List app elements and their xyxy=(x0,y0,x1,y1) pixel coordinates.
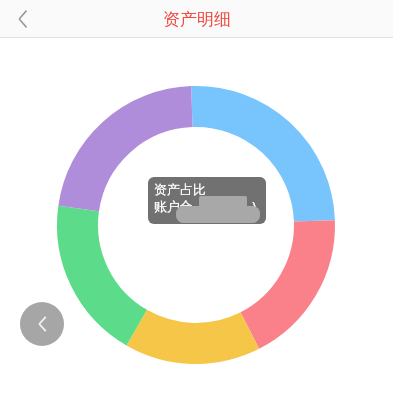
button[interactable]: Back xyxy=(0,0,46,38)
staticText: 资产明细 xyxy=(163,9,231,30)
button[interactable]: Back xyxy=(20,302,64,346)
staticText: 账户合 xyxy=(154,198,193,214)
staticText: ) xyxy=(252,197,256,215)
staticText: 资产占比 xyxy=(154,181,206,197)
